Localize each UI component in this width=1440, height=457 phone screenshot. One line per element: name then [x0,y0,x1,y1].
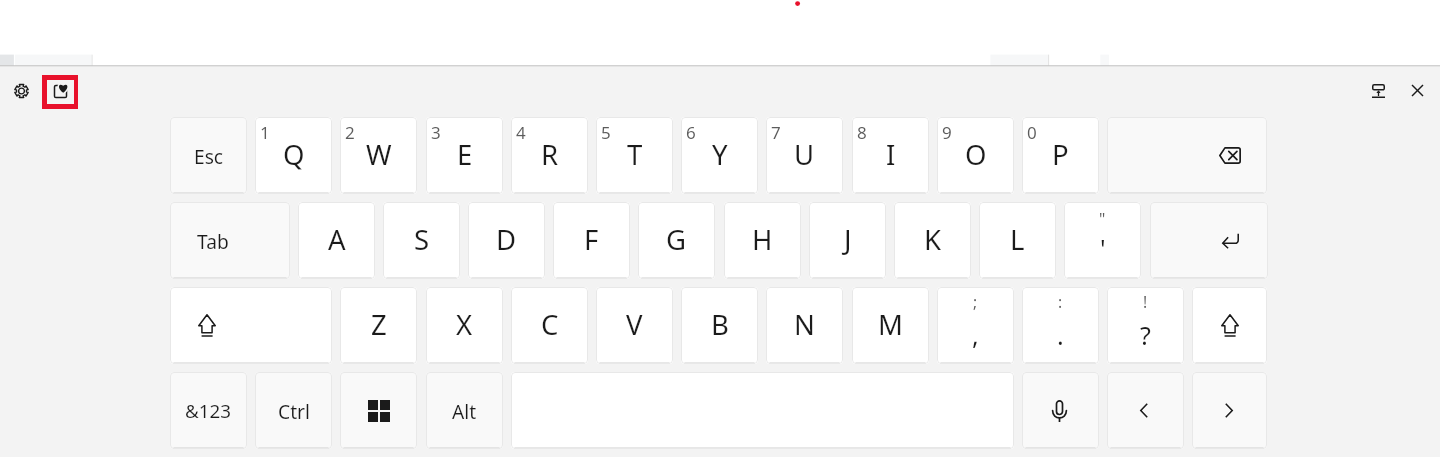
button[interactable]: Space [511,372,1014,449]
staticText: V [626,306,643,343]
button[interactable]: V [596,287,673,364]
staticText: 7 [771,121,781,144]
staticText: N [794,306,815,343]
staticText: Q [283,136,305,173]
staticText: ! [1143,291,1148,312]
button[interactable]: F [553,202,630,279]
staticText: F [584,221,599,258]
button[interactable]: Tab [170,202,290,279]
button[interactable]: Y [681,117,758,194]
button[interactable]: ' " [1064,202,1141,279]
staticText: 2 [345,121,355,144]
staticText: W [366,136,392,173]
staticText: Tab [197,228,229,254]
staticText: X [456,306,473,343]
button[interactable]: D [468,202,545,279]
staticText: L [1010,221,1025,258]
staticText: 4 [516,121,526,144]
button[interactable]: Backspace [1107,117,1267,194]
button[interactable]: Ctrl [255,372,332,449]
staticText: 3 [431,121,441,144]
staticText: U [794,136,815,173]
staticText: S [414,221,430,258]
staticText: D [496,221,517,258]
button[interactable]: A [298,202,375,279]
button[interactable]: J [809,202,886,279]
button[interactable]: , ; [937,287,1014,364]
button[interactable]: M [852,287,929,364]
button[interactable]: C [511,287,588,364]
staticText: 9 [942,121,952,144]
staticText: C [541,306,559,343]
button[interactable]: Shift [1192,287,1267,364]
button[interactable]: E [426,117,503,194]
button[interactable]: T [596,117,673,194]
button[interactable]: Shift [170,287,332,364]
button[interactable]: I [852,117,929,194]
staticText: K [924,221,942,258]
staticText: Ctrl [278,398,310,424]
staticText: G [666,221,687,258]
button[interactable]: W [340,117,417,194]
button[interactable]: Z [340,287,417,364]
staticText: O [965,136,987,173]
button[interactable]: L [979,202,1056,279]
button[interactable]: ? ! [1107,287,1184,364]
staticText: M [878,306,903,343]
staticText: 8 [857,121,867,144]
staticText: I [886,136,896,173]
staticText: 5 [601,121,611,144]
staticText: Z [371,306,387,343]
staticText: A [328,221,346,258]
staticText: Alt [452,398,477,424]
staticText: 6 [686,121,696,144]
button[interactable]: Enter [1150,202,1268,279]
button[interactable]: Move cursor left [1107,372,1184,449]
button[interactable]: P [1022,117,1099,194]
button[interactable]: G [638,202,715,279]
staticText: P [1052,136,1069,173]
staticText: R [541,136,559,173]
staticText: : [1058,291,1063,312]
button[interactable]: . : [1022,287,1099,364]
button[interactable]: R [511,117,588,194]
button[interactable]: Emoji and stickers [42,75,78,109]
staticText: Y [712,136,728,173]
staticText: B [711,306,729,343]
staticText: T [627,136,643,173]
staticText: 0 [1027,121,1037,144]
staticText: H [752,221,773,258]
button[interactable]: S [383,202,460,279]
button[interactable]: Move cursor right [1192,372,1267,449]
staticText: E [457,136,473,173]
staticText: Esc [194,143,224,169]
button[interactable]: N [766,287,843,364]
button[interactable]: Esc [170,117,247,194]
button[interactable]: Alt [426,372,503,449]
button[interactable]: B [681,287,758,364]
button[interactable]: U [766,117,843,194]
staticText: ? [1140,318,1151,352]
button[interactable]: Close [1400,74,1433,107]
staticText: ; [973,291,978,312]
button[interactable]: Dock keyboard [1362,74,1395,107]
staticText: J [844,221,852,258]
button[interactable]: K [894,202,971,279]
button[interactable]: O [937,117,1014,194]
button[interactable]: Q [255,117,332,194]
button[interactable]: Microphone [1022,372,1099,449]
button[interactable]: H [724,202,801,279]
staticText: , [972,318,979,352]
button[interactable]: X [426,287,503,364]
staticText: ' [1100,231,1106,265]
button[interactable]: Windows [340,372,417,449]
button[interactable]: Numbers and symbols [170,372,247,449]
staticText: 1 [260,121,270,144]
staticText: . [1057,318,1064,352]
staticText: &123 [185,398,232,424]
button[interactable]: Settings [5,74,38,107]
staticText: " [1099,208,1106,229]
